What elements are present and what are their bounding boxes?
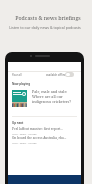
staticText: Now playing [12, 82, 30, 86]
staticText: Podcasts & news briefings [15, 14, 81, 21]
staticText: On board the access Australia, rha... [12, 136, 67, 140]
staticText: 10:31 · share · 1 hr ago [12, 133, 37, 136]
button[interactable]: Perl laffout massive: first report... [12, 127, 77, 136]
staticText: Up next [12, 121, 24, 125]
staticText: Listen to our daily news & topical podca… [9, 25, 81, 30]
button[interactable]: Available offline toggle [65, 72, 74, 77]
button[interactable]: On board the access Australia, rha... [12, 136, 77, 145]
staticText: Pale, male and stale: Where are all our … [32, 89, 72, 104]
staticText: Your all [12, 73, 22, 77]
staticText: 10:31 · share · 1 hr ago [12, 142, 37, 145]
staticText: Perl laffout massive: first report... [12, 127, 63, 131]
staticText: available offline [46, 73, 66, 77]
button[interactable] [12, 90, 27, 107]
